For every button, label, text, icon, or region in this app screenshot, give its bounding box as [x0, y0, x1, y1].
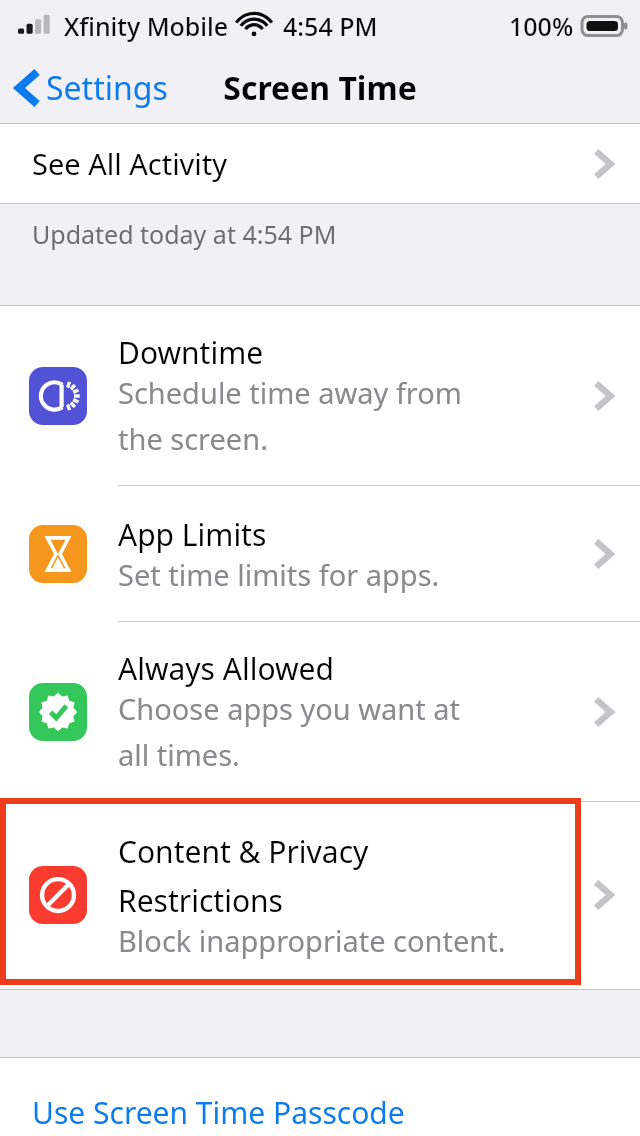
button[interactable]: See All Activity	[0, 124, 640, 203]
staticText: Always Allowed	[118, 648, 334, 689]
staticText: Downtime	[118, 332, 264, 373]
staticText: Use Screen Time Passcode	[32, 1092, 405, 1133]
staticText: Schedule time away from the screen.	[118, 373, 462, 459]
staticText: Screen Time	[223, 66, 417, 110]
button[interactable]: Content & Privacy Restrictions	[0, 802, 640, 988]
staticText: Settings	[46, 66, 168, 110]
button[interactable]: Settings	[16, 66, 168, 110]
button[interactable]: Always Allowed	[0, 622, 640, 801]
staticText: Updated today at 4:54 PM	[32, 217, 337, 251]
button[interactable]: Use Screen Time Passcode	[0, 1058, 640, 1136]
staticText: 4:54 PM	[283, 9, 378, 43]
staticText: Block inappropriate content.	[118, 921, 506, 960]
staticText: Set time limits for apps.	[118, 555, 440, 594]
staticText: See All Activity	[32, 144, 228, 183]
staticText: 100%	[509, 9, 574, 43]
staticText: Choose apps you want at all times.	[118, 689, 461, 775]
button[interactable]: Downtime	[0, 306, 640, 485]
button[interactable]: App Limits	[0, 486, 640, 621]
staticText: Content & Privacy Restrictions	[118, 831, 369, 921]
staticText: App Limits	[118, 514, 267, 555]
staticText: Xfinity Mobile	[64, 9, 229, 43]
